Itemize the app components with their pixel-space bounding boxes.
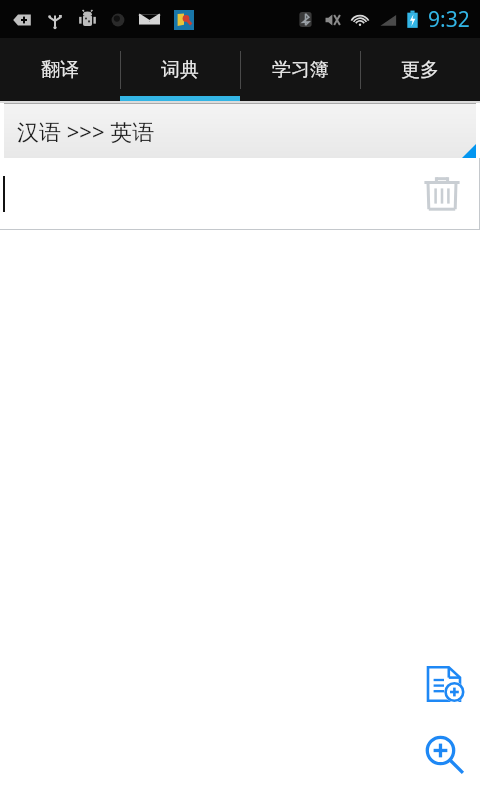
button[interactable]: Add word — [416, 656, 472, 712]
staticText: 词典 — [161, 58, 199, 82]
button[interactable]: Clear — [416, 168, 468, 220]
button[interactable]: 学习簿 — [240, 38, 360, 101]
staticText: 翻译 — [41, 58, 79, 82]
button[interactable]: 更多 — [360, 38, 480, 101]
staticText: 9:32 — [428, 5, 470, 34]
button[interactable]: Zoom in — [416, 726, 472, 782]
button[interactable]: 词典 — [120, 38, 240, 101]
button[interactable]: 翻译 — [0, 38, 120, 101]
button[interactable]: 汉语 >>> 英语 — [4, 103, 476, 158]
staticText: 学习簿 — [272, 58, 329, 82]
staticText: 汉语 >>> 英语 — [17, 116, 155, 146]
staticText: 更多 — [401, 58, 439, 82]
